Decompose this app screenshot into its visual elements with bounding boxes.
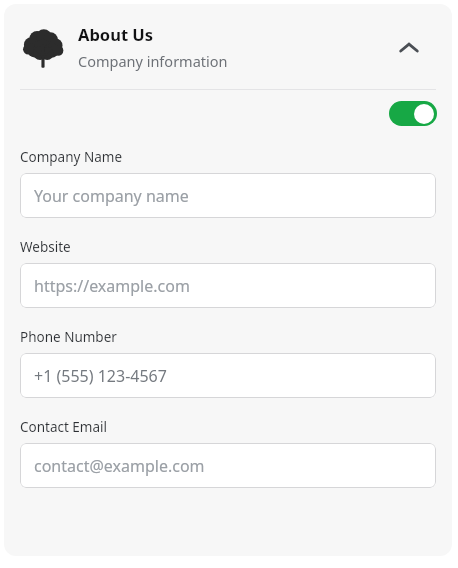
staticText: contact@example.com [34, 455, 205, 477]
button[interactable]: +1 (555) 123-4567 [20, 353, 436, 398]
staticText: +1 (555) 123-4567 [34, 365, 167, 387]
staticText: Phone Number [20, 328, 117, 346]
staticText: https://example.com [34, 275, 190, 297]
staticText: Your company name [34, 185, 189, 207]
button[interactable]: About Us [4, 4, 452, 89]
staticText: Company Name [20, 148, 123, 166]
button[interactable]: contact@example.com [20, 443, 436, 488]
button[interactable]: Toggle section enabled [389, 101, 437, 126]
staticText: Website [20, 238, 71, 256]
button[interactable]: https://example.com [20, 263, 436, 308]
staticText: About Us [78, 23, 154, 45]
staticText: Company information [78, 51, 228, 71]
button[interactable]: Collapse section [389, 27, 429, 67]
staticText: Contact Email [20, 418, 108, 436]
button[interactable]: Your company name [20, 173, 436, 218]
